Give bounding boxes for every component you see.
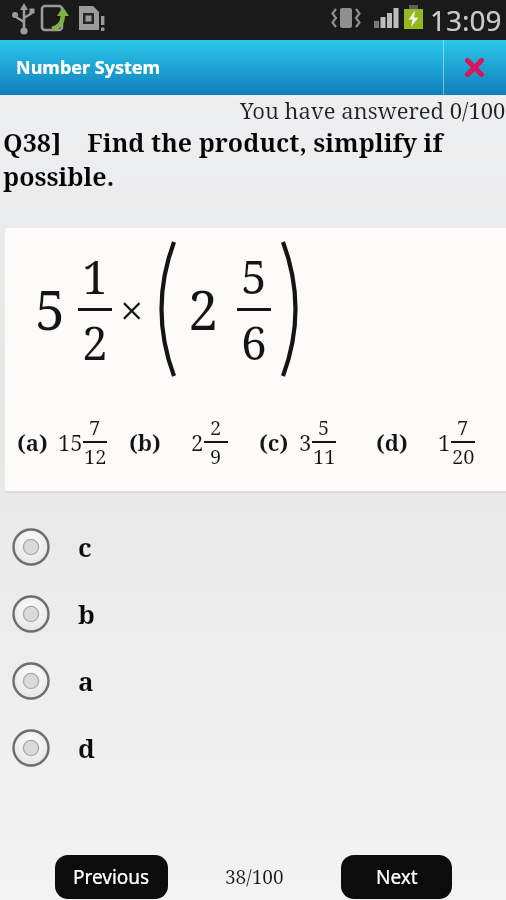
button[interactable]: a xyxy=(0,647,506,714)
staticText: 9 xyxy=(210,443,222,470)
staticText: You have answered 0/100 xyxy=(240,95,506,125)
staticText: 1 xyxy=(438,427,451,457)
staticText: Previous xyxy=(73,864,150,890)
staticText: (c) xyxy=(259,427,289,457)
staticText: 3 xyxy=(299,427,312,457)
staticText: possible. xyxy=(3,159,115,193)
staticText: 20 xyxy=(452,443,475,470)
staticText: 2 xyxy=(188,272,219,346)
staticText: 1 xyxy=(82,245,108,308)
button[interactable]: Next xyxy=(341,855,452,899)
staticText: 11 xyxy=(313,443,336,470)
staticText: d xyxy=(78,730,95,765)
staticText: b xyxy=(78,596,95,631)
staticText: a xyxy=(78,663,94,698)
staticText: Number System xyxy=(16,55,161,80)
staticText: × xyxy=(120,281,144,338)
staticText: 2 xyxy=(191,427,204,457)
button[interactable]: c xyxy=(0,513,506,580)
staticText: 13:09 xyxy=(430,1,502,39)
staticText: 2 xyxy=(210,414,222,441)
staticText: 7 xyxy=(89,414,101,441)
staticText: Next xyxy=(376,864,418,890)
staticText: 5 xyxy=(35,272,66,346)
staticText: 38/100 xyxy=(225,864,284,890)
staticText: 2 xyxy=(82,311,108,374)
staticText: 12 xyxy=(84,443,107,470)
staticText: (d) xyxy=(376,427,408,457)
button[interactable]: b xyxy=(0,580,506,647)
staticText: 5 xyxy=(318,414,330,441)
button[interactable]: Previous xyxy=(55,855,168,899)
button[interactable] xyxy=(443,40,506,95)
staticText: (a) xyxy=(17,427,48,457)
staticText: 7 xyxy=(457,414,469,441)
staticText: Q38] Find the product, simplify if xyxy=(3,125,443,159)
staticText: c xyxy=(78,529,92,564)
staticText: 5 xyxy=(241,245,267,308)
staticText: 15 xyxy=(58,427,83,457)
button[interactable]: d xyxy=(0,714,506,781)
staticText: 6 xyxy=(241,311,267,374)
staticText: (b) xyxy=(129,427,161,457)
